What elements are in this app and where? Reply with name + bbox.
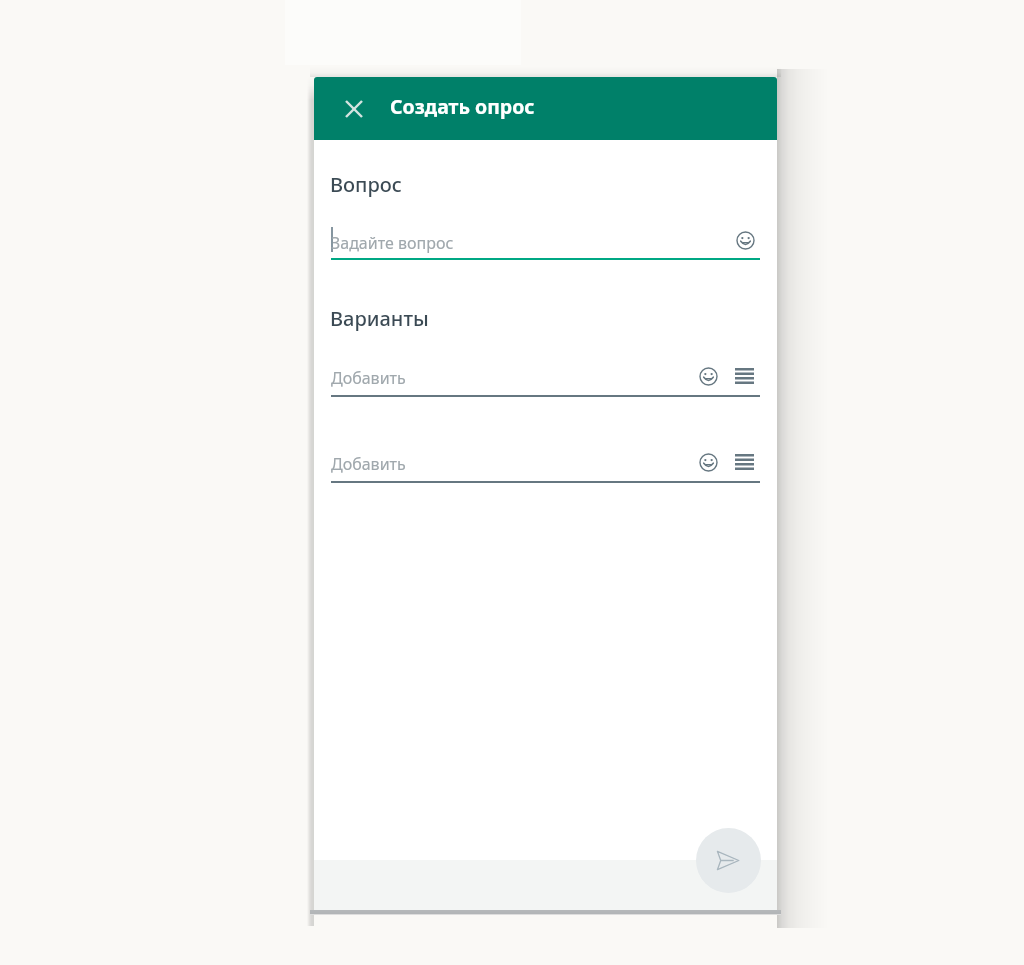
button[interactable]: Insert emoji [736, 231, 755, 250]
button[interactable]: Insert emoji [699, 367, 718, 386]
staticText: Варианты [330, 305, 429, 332]
button[interactable]: Добавить [331, 364, 760, 397]
button[interactable]: Insert emoji [699, 453, 718, 472]
button[interactable]: Close [336, 91, 372, 127]
staticText: Добавить [331, 453, 406, 475]
button[interactable]: Задайте вопрос [331, 220, 760, 260]
button[interactable]: Reorder option [735, 368, 754, 384]
staticText: Добавить [331, 367, 406, 389]
button[interactable]: Reorder option [735, 454, 754, 470]
button[interactable]: Добавить [331, 450, 760, 483]
button[interactable]: Send [696, 828, 761, 893]
staticText: Вопрос [330, 171, 402, 198]
staticText: Создать опрос [390, 93, 535, 120]
staticText: Задайте вопрос [331, 232, 454, 254]
